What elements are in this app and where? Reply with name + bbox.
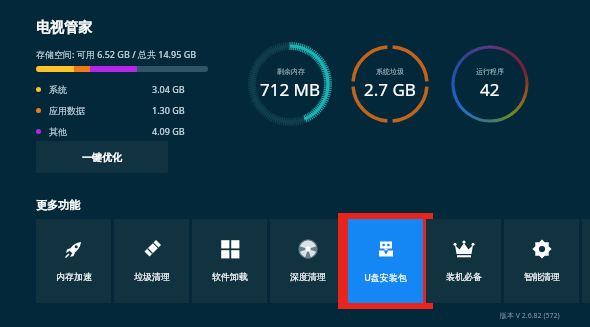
staticText: 智能清理	[524, 271, 560, 282]
button[interactable]: U盘安装包	[338, 213, 433, 309]
staticText: 系统垃圾	[376, 67, 404, 76]
staticText: 1.30 GB	[152, 104, 185, 116]
staticText: 更多功能	[36, 198, 80, 212]
staticText: 装机必备	[446, 271, 482, 282]
button[interactable]: 垃圾清理	[114, 219, 189, 303]
staticText: 2.7 GB	[364, 78, 416, 101]
staticText: 系统	[49, 84, 67, 95]
button[interactable]: 内存加速	[36, 219, 111, 303]
button[interactable]: 智能清理	[504, 219, 579, 303]
staticText: 3.04 GB	[152, 83, 185, 95]
button[interactable]: 装机必备	[426, 219, 501, 303]
staticText: 电视管家	[36, 19, 92, 37]
staticText: U盘安装包	[364, 271, 407, 283]
staticText: 一键优化	[82, 151, 122, 164]
button[interactable]: 一键优化	[36, 141, 168, 173]
staticText: 深度清理	[290, 271, 326, 282]
staticText: 版本 V 2.6.82 (572)	[500, 311, 560, 321]
staticText: 42	[480, 78, 500, 101]
staticText: 4.09 GB	[152, 125, 185, 137]
staticText: 应用数据	[49, 105, 85, 116]
button[interactable]: 深度清理	[270, 219, 345, 303]
staticText: 内存加速	[56, 271, 92, 282]
staticText: 其他	[49, 126, 67, 137]
staticText: 运行程序	[476, 67, 504, 76]
staticText: 垃圾清理	[134, 271, 170, 282]
button[interactable]: 软件卸载	[192, 219, 267, 303]
staticText: 软件卸载	[212, 271, 248, 282]
staticText: 712 MB	[260, 78, 321, 101]
staticText: 存储空间: 可用 6.52 GB / 总共 14.95 GB	[36, 48, 197, 60]
staticText: 剩余内存	[277, 67, 305, 76]
